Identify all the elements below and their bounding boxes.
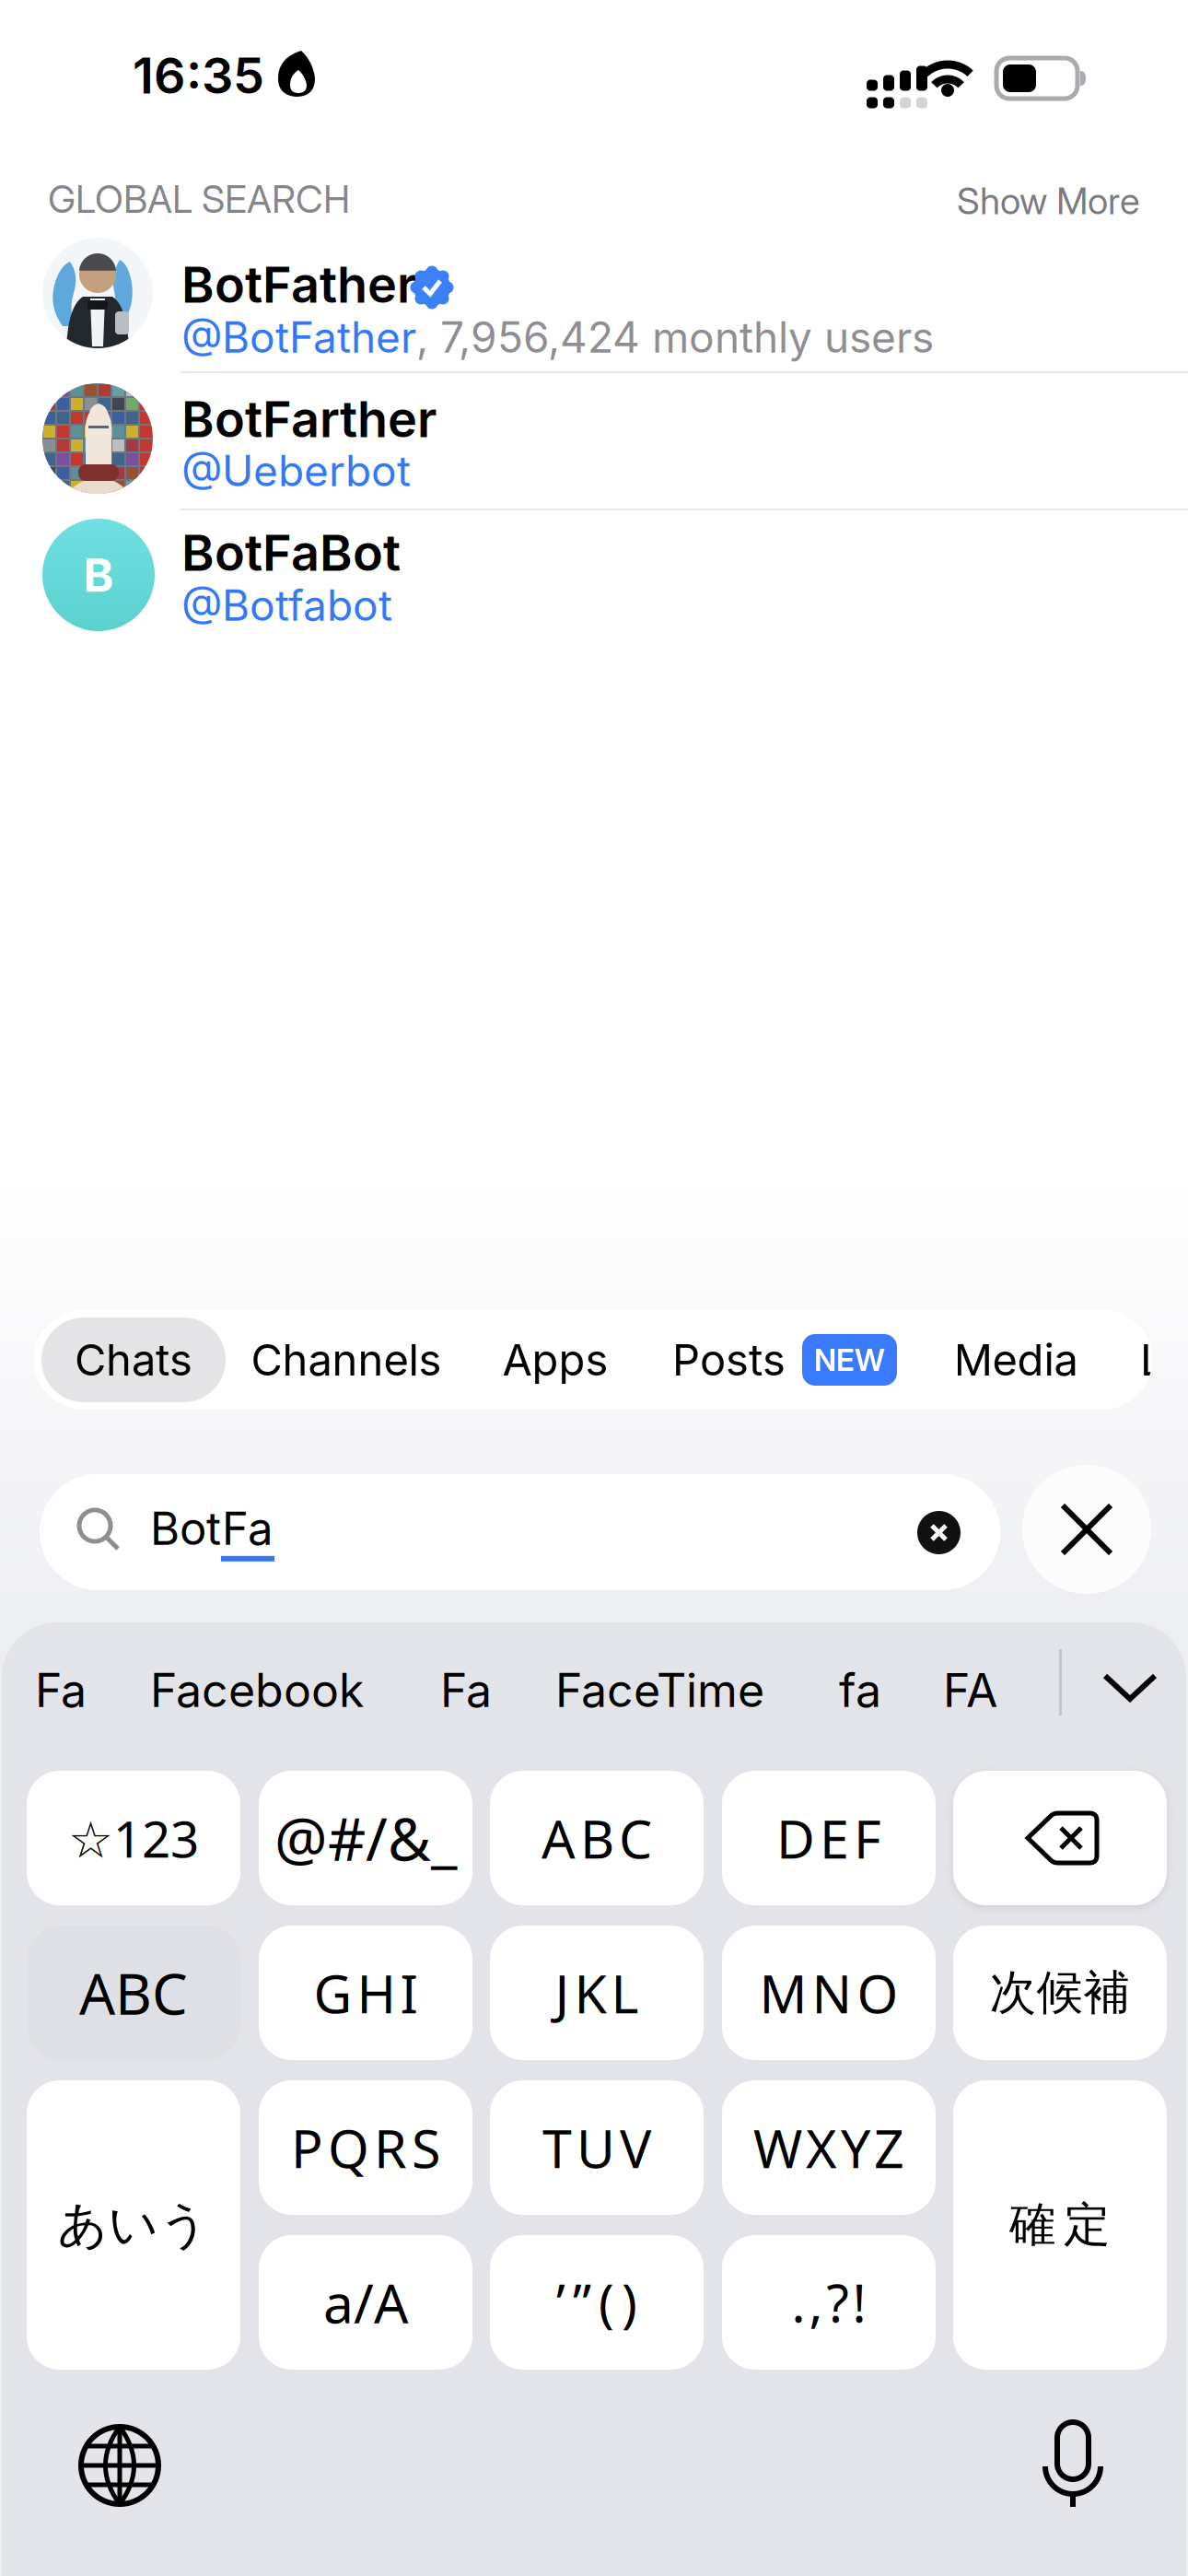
staticText: a/A bbox=[323, 2266, 408, 2338]
staticText: , 7,956,424 monthly users bbox=[416, 312, 934, 362]
button[interactable]: WXYZ bbox=[722, 2080, 936, 2215]
button[interactable]: DEF bbox=[722, 1771, 936, 1905]
staticText: WXYZ bbox=[753, 2112, 904, 2183]
button[interactable]: FA bbox=[943, 1663, 997, 1717]
staticText: MNO bbox=[759, 1958, 898, 2028]
staticText: Links bbox=[1140, 1334, 1188, 1385]
staticText: @BotFather bbox=[181, 312, 416, 362]
button[interactable]: a/A bbox=[259, 2235, 472, 2370]
button[interactable]: BotFather bbox=[0, 0, 1188, 645]
staticText: ☆123 bbox=[68, 1805, 199, 1871]
staticText: 16:35 bbox=[133, 46, 264, 105]
button[interactable]: ABC bbox=[490, 1771, 704, 1905]
button[interactable]: Show More bbox=[0, 176, 1140, 226]
staticText: BotFaBot bbox=[181, 523, 401, 582]
staticText: @#/&_ bbox=[274, 1799, 457, 1877]
staticText: Bot bbox=[150, 1502, 221, 1555]
button[interactable]: あいう bbox=[27, 2080, 240, 2370]
staticText: @Botfabot bbox=[181, 580, 392, 630]
button[interactable]: Clear text bbox=[917, 1511, 961, 1554]
button[interactable]: fa bbox=[839, 1663, 881, 1717]
staticText: JKL bbox=[555, 1958, 639, 2028]
button[interactable]: Channels bbox=[181, 1317, 512, 1402]
staticText: Fa bbox=[440, 1663, 492, 1717]
staticText: 確定 bbox=[1009, 2196, 1111, 2254]
staticText: @Ueberbot bbox=[181, 446, 411, 496]
button[interactable]: Fa bbox=[440, 1663, 492, 1717]
button[interactable]: Dictation bbox=[1031, 2422, 1114, 2507]
button[interactable]: Apps bbox=[390, 1317, 721, 1402]
staticText: NEW bbox=[814, 1342, 885, 1378]
button[interactable]: 次候補 bbox=[953, 1926, 1167, 2060]
button[interactable]: ABC bbox=[27, 1926, 240, 2060]
button[interactable]: B bbox=[0, 0, 1188, 645]
staticText: fa bbox=[839, 1663, 881, 1717]
staticText: Fa bbox=[222, 1502, 274, 1555]
staticText: PQRS bbox=[291, 2112, 440, 2183]
button[interactable]: Next keyboard bbox=[78, 2424, 161, 2507]
staticText: 次候補 bbox=[990, 1964, 1130, 2021]
button[interactable]: 確定 bbox=[953, 2080, 1167, 2370]
staticText: Facebook bbox=[150, 1663, 364, 1717]
button[interactable]: .,?! bbox=[722, 2235, 936, 2370]
button[interactable]: ’”() bbox=[490, 2235, 704, 2370]
button[interactable]: @#/&_ bbox=[259, 1771, 472, 1905]
staticText: Media bbox=[954, 1334, 1078, 1385]
staticText: GLOBAL SEARCH bbox=[48, 177, 350, 221]
staticText: Chats bbox=[75, 1334, 192, 1385]
staticText: BotFather bbox=[181, 255, 416, 314]
button[interactable]: TUV bbox=[490, 2080, 704, 2215]
staticText: DEF bbox=[776, 1803, 881, 1873]
staticText: TUV bbox=[542, 2112, 651, 2183]
staticText: GHI bbox=[314, 1958, 418, 2028]
staticText: Channels bbox=[251, 1334, 442, 1385]
staticText: Fa bbox=[35, 1663, 87, 1717]
button[interactable]: ☆123 bbox=[27, 1771, 240, 1905]
staticText: ABC bbox=[79, 1955, 188, 2030]
button[interactable]: Media bbox=[850, 1317, 1182, 1402]
button[interactable]: FaceTime bbox=[555, 1663, 764, 1717]
button[interactable]: Posts bbox=[672, 1317, 897, 1402]
button[interactable]: Hide suggestions bbox=[1105, 1676, 1155, 1699]
button[interactable]: Close search bbox=[1022, 1465, 1151, 1594]
staticText: FaceTime bbox=[555, 1663, 764, 1717]
staticText: ’”() bbox=[556, 2268, 637, 2337]
button[interactable]: Facebook bbox=[150, 1663, 364, 1717]
staticText: Show More bbox=[957, 179, 1140, 223]
button[interactable]: Fa bbox=[35, 1663, 87, 1717]
button[interactable]: Chats bbox=[41, 1317, 226, 1402]
button[interactable]: JKL bbox=[490, 1926, 704, 2060]
button[interactable]: GHI bbox=[259, 1926, 472, 2060]
staticText: あいう bbox=[58, 2195, 210, 2255]
staticText: Posts bbox=[672, 1334, 786, 1385]
staticText: ABC bbox=[542, 1803, 652, 1873]
staticText: FA bbox=[943, 1663, 997, 1717]
button[interactable]: PQRS bbox=[259, 2080, 472, 2215]
button[interactable]: Delete bbox=[953, 1771, 1167, 1905]
staticText: .,?! bbox=[792, 2268, 866, 2337]
staticText: BotFarther bbox=[181, 390, 437, 448]
staticText: Apps bbox=[502, 1334, 608, 1385]
button[interactable]: MNO bbox=[722, 1926, 936, 2060]
button[interactable]: Links bbox=[1140, 1317, 1188, 1402]
button[interactable]: BotFarther bbox=[0, 0, 1188, 645]
staticText: B bbox=[83, 548, 114, 602]
